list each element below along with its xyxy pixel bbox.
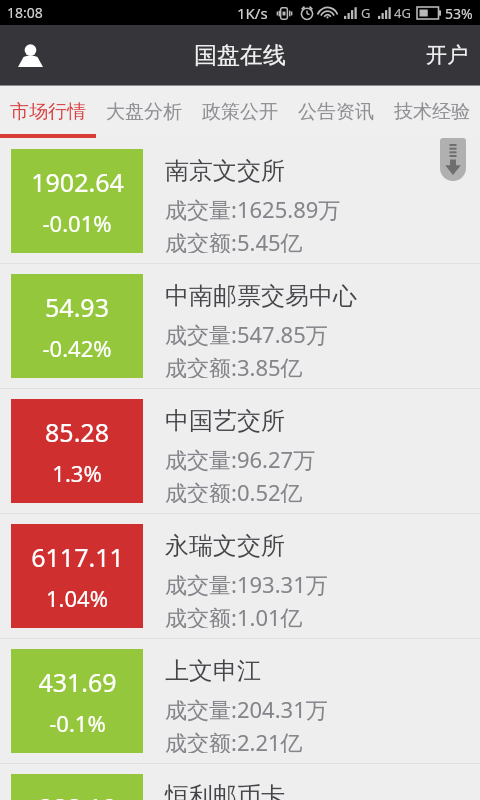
staticText: 6117.11 [31,540,124,574]
staticText: 18:08 [7,3,43,22]
staticText: 53% [445,4,473,23]
staticText: 1.3% [52,458,102,488]
staticText: 中南邮票交易中心 [165,281,357,311]
button[interactable]: 开户 [404,25,480,85]
staticText: 政策公开 [202,100,278,124]
staticText: G [361,4,371,22]
button[interactable]: 市场行情 [0,86,96,138]
button[interactable]: 1902.64 [0,139,480,263]
staticText: 1.04% [46,583,108,613]
staticText: -0.01% [42,208,112,238]
staticText: -0.1% [49,708,106,738]
button[interactable]: Account [0,25,60,85]
button[interactable]: 政策公开 [192,86,288,138]
staticText: 成交额:0.52亿 [165,477,303,503]
button[interactable]: 54.93 [0,264,480,388]
staticText: 成交额:1.01亿 [165,602,303,628]
staticText: 国盘在线 [194,41,286,70]
staticText: 431.69 [38,665,117,699]
staticText: 54.93 [45,290,109,324]
button[interactable]: 公告资讯 [288,86,384,138]
staticText: 上文申江 [165,656,261,686]
staticText: 288.10 [38,790,117,800]
staticText: 中国艺交所 [165,406,285,436]
button[interactable]: 85.28 [0,389,480,513]
staticText: 大盘分析 [106,100,182,124]
staticText: 开户 [426,42,468,68]
staticText: 成交量:96.27万 [165,444,316,474]
staticText: 1902.64 [31,165,124,199]
button[interactable]: 288.10 [0,764,480,800]
staticText: 永瑞文交所 [165,531,285,561]
staticText: 技术经验 [394,100,470,124]
button[interactable]: 大盘分析 [96,86,192,138]
staticText: 1K/s [237,3,268,23]
staticText: 成交量:193.31万 [165,569,328,599]
staticText: 公告资讯 [298,100,374,124]
button[interactable]: 技术经验 [384,86,480,138]
staticText: 85.28 [45,415,109,449]
staticText: 恒利邮币卡 [165,781,285,800]
staticText: 成交额:5.45亿 [165,227,303,253]
staticText: 市场行情 [10,100,86,124]
staticText: 成交额:2.21亿 [165,727,303,753]
button[interactable]: 431.69 [0,639,480,763]
other: Scroll down [440,138,466,181]
button[interactable]: 6117.11 [0,514,480,638]
staticText: -0.42% [42,333,112,363]
staticText: 成交量:204.31万 [165,694,328,724]
staticText: 4G [394,4,411,22]
staticText: 成交量:547.85万 [165,319,328,349]
staticText: 成交量:1625.89万 [165,194,341,224]
staticText: 南京文交所 [165,156,285,186]
staticText: 成交额:3.85亿 [165,352,303,378]
